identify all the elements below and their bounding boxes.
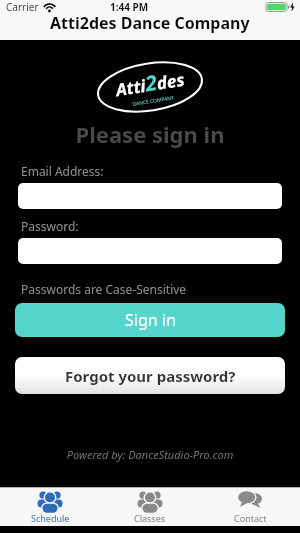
staticText: Classes xyxy=(134,512,166,524)
button[interactable]: Sign in xyxy=(15,303,285,337)
button[interactable]: Forgot your password? xyxy=(15,357,285,394)
button[interactable] xyxy=(18,238,282,264)
staticText: Forgot your password? xyxy=(65,366,236,386)
button[interactable]: Contact xyxy=(200,488,300,526)
staticText: Email Address: xyxy=(21,163,104,179)
staticText: Passwords are Case-Sensitive xyxy=(21,281,187,297)
staticText: Password: xyxy=(21,218,79,234)
staticText: Please sign in xyxy=(0,119,300,149)
button[interactable] xyxy=(18,183,282,209)
staticText: Sign in xyxy=(125,309,176,331)
staticText: Schedule xyxy=(31,512,70,524)
staticText: Powered by: DanceStudio-Pro.com xyxy=(0,447,300,462)
button[interactable]: Schedule xyxy=(0,488,100,526)
staticText: Atti2des Dance Company xyxy=(50,12,250,34)
button[interactable]: Classes xyxy=(100,488,200,526)
staticText: DANCE COMPANY xyxy=(132,94,175,108)
staticText: Atti2des xyxy=(114,64,186,103)
staticText: Contact xyxy=(234,512,267,524)
staticText: Carrier xyxy=(6,0,39,14)
staticText: 1:44 PM xyxy=(110,0,149,14)
